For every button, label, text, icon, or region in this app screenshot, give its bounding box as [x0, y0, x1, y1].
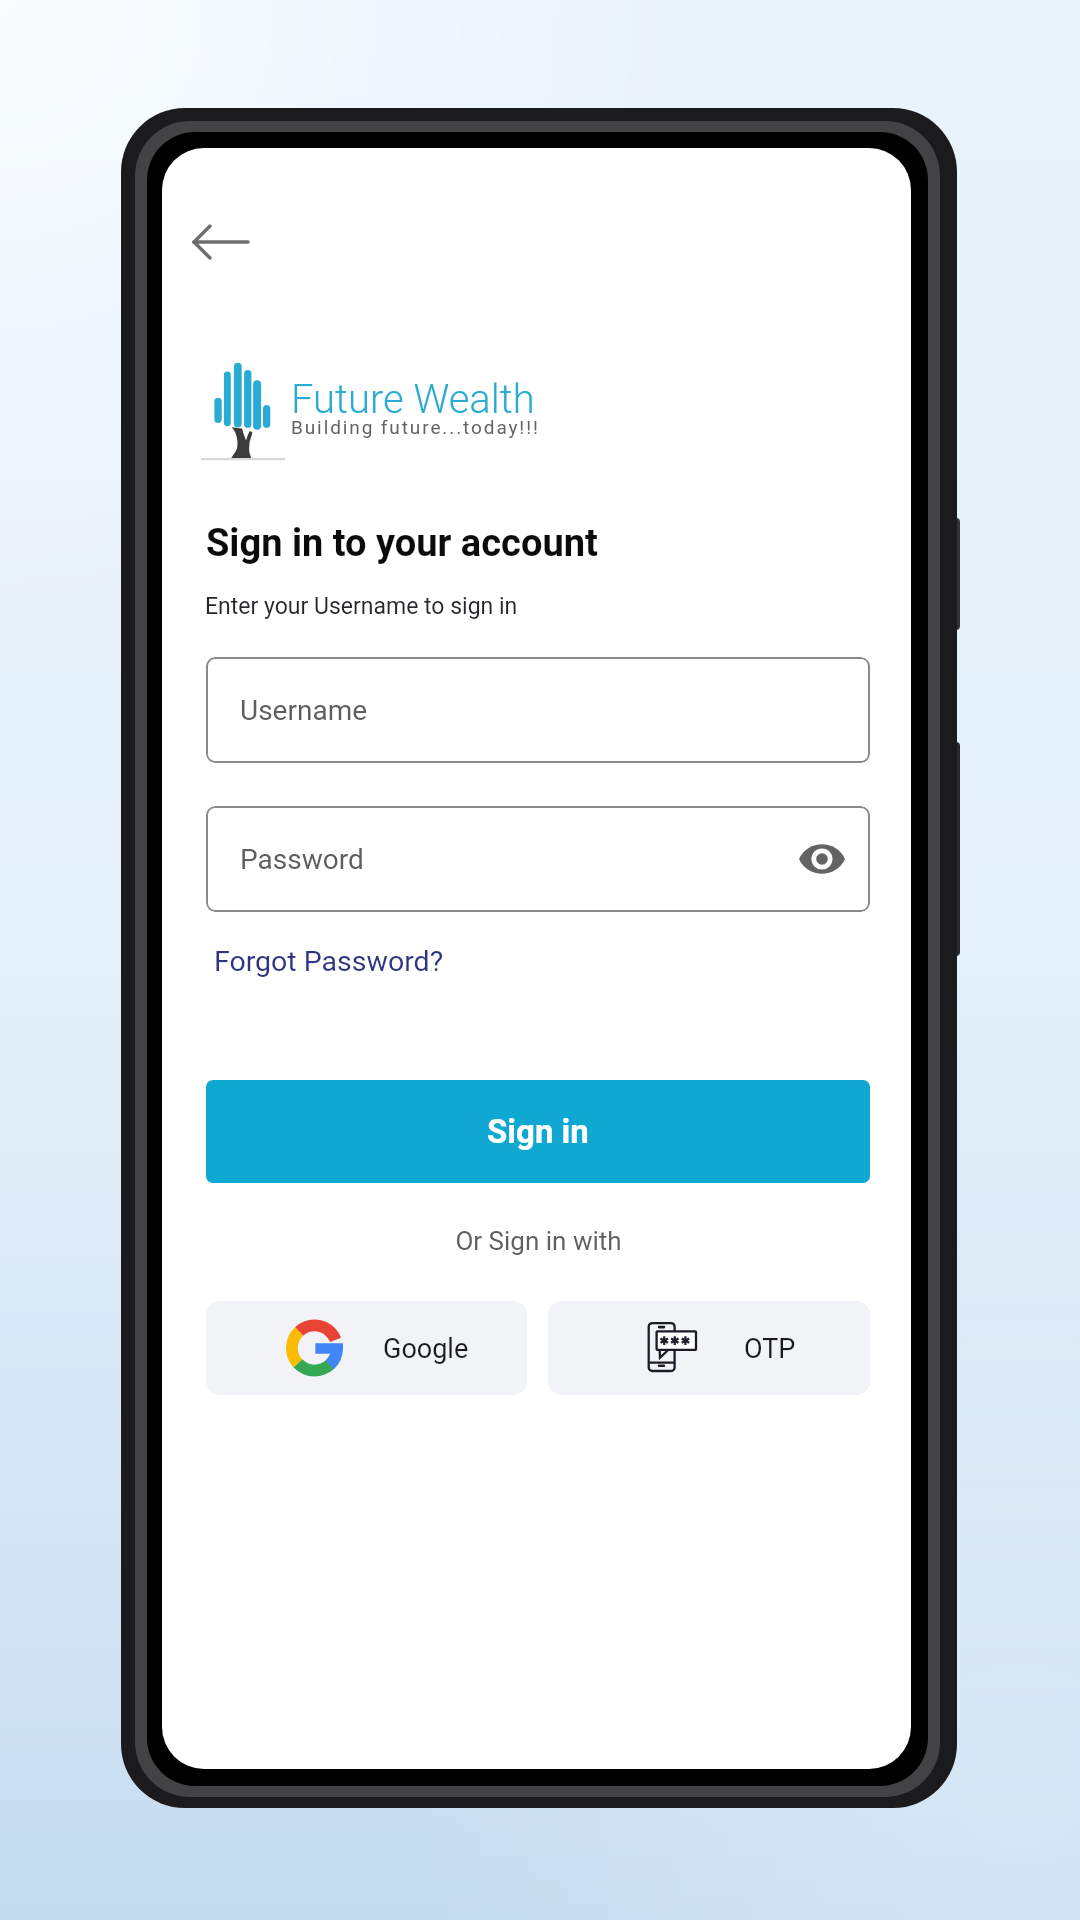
button[interactable]: OTP	[548, 1301, 870, 1395]
staticText: Building future...today!!!	[291, 416, 540, 438]
staticText: Sign in to your account	[206, 521, 598, 566]
staticText: Enter your Username to sign in	[205, 593, 518, 620]
staticText: Future Wealth	[291, 376, 535, 423]
button[interactable]: Password	[206, 806, 870, 912]
staticText: Password	[240, 843, 364, 876]
staticText: Sign in	[487, 1112, 589, 1151]
button[interactable]: Forgot Password?	[206, 937, 452, 986]
staticText: OTP	[744, 1333, 796, 1365]
staticText: Forgot Password?	[214, 945, 444, 978]
button[interactable]: Sign in	[206, 1080, 870, 1183]
button[interactable]: Show password	[790, 827, 854, 891]
staticText: Or Sign in with	[455, 1226, 622, 1256]
staticText: Google	[383, 1333, 469, 1365]
button[interactable]: Back	[170, 204, 268, 290]
staticText: Username	[240, 694, 368, 727]
button[interactable]: Google	[206, 1301, 527, 1395]
button[interactable]: Username	[206, 657, 870, 763]
